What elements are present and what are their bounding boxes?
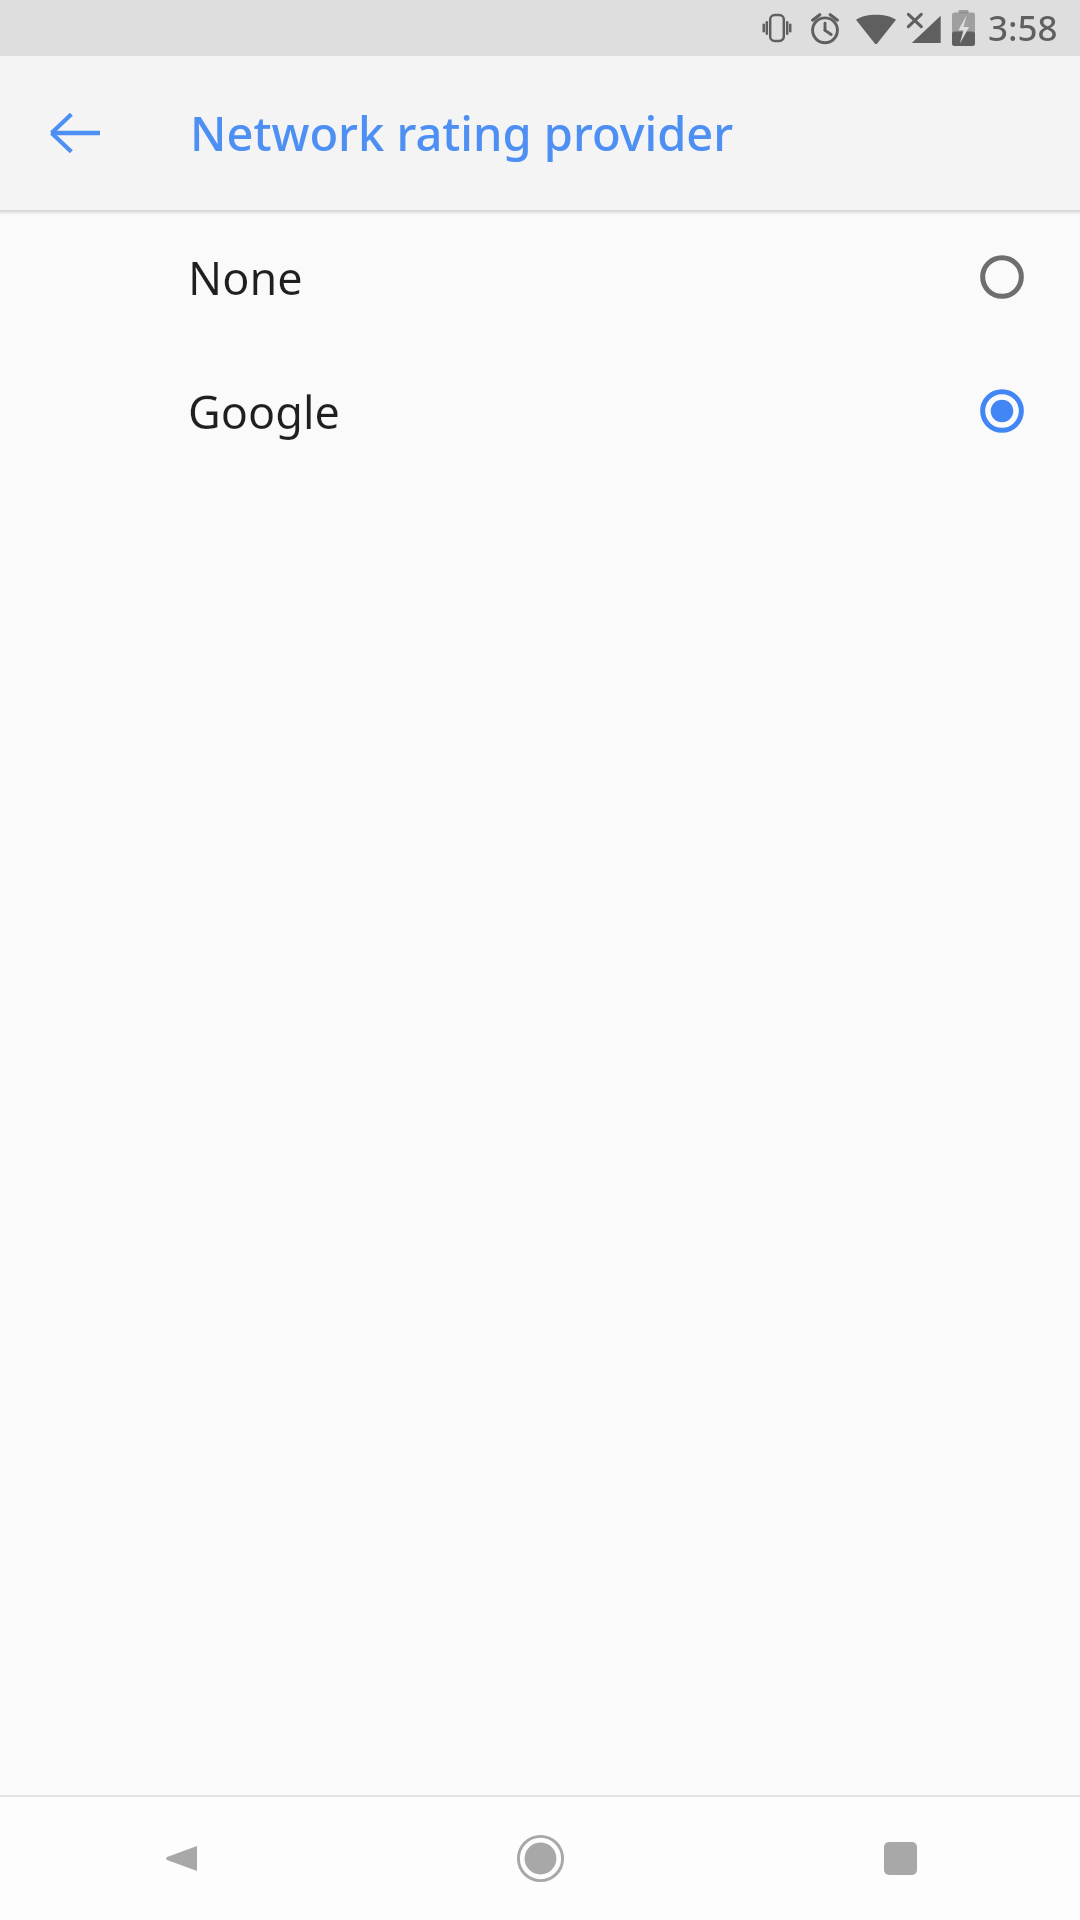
staticText: None	[188, 247, 978, 308]
button[interactable]: Back	[0, 1797, 360, 1920]
button[interactable]: Home	[360, 1797, 720, 1920]
button[interactable]: None	[0, 210, 1080, 344]
button[interactable]: Google	[0, 344, 1080, 478]
button[interactable]: Navigate up	[26, 84, 124, 182]
staticText: Google	[188, 381, 978, 442]
staticText: 3:58	[988, 4, 1058, 52]
staticText: Network rating provider	[190, 101, 734, 165]
button[interactable]: Recent apps	[720, 1797, 1080, 1920]
